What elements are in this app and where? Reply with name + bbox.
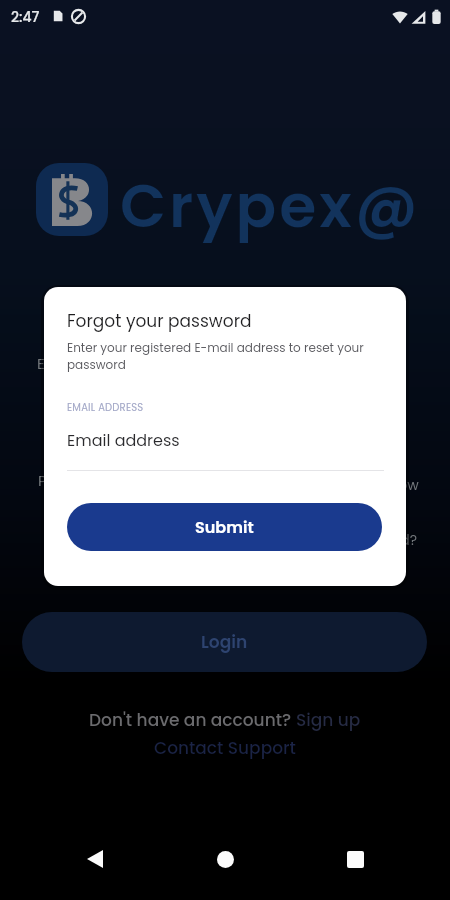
button[interactable]: Login bbox=[22, 612, 427, 672]
staticText: Submit bbox=[195, 516, 254, 538]
button[interactable]: Sign up bbox=[296, 708, 361, 732]
button[interactable]: Recent apps bbox=[331, 835, 379, 883]
button[interactable]: Home bbox=[201, 835, 249, 883]
button[interactable]: Submit bbox=[67, 503, 382, 551]
staticText: 2:47 bbox=[11, 7, 40, 27]
staticText: Login bbox=[201, 630, 248, 654]
staticText: Crypex@ bbox=[120, 164, 421, 248]
button[interactable]: Contact Support bbox=[154, 736, 296, 760]
staticText: Forgot Password? bbox=[294, 530, 418, 550]
staticText: Email address bbox=[67, 429, 180, 451]
staticText: Forgot your password bbox=[67, 309, 252, 333]
staticText: Sign up bbox=[296, 708, 361, 732]
staticText: Show bbox=[381, 475, 419, 495]
staticText: Password bbox=[38, 470, 111, 491]
button[interactable]: Show bbox=[381, 475, 419, 495]
staticText: EMAIL ADDRESS bbox=[67, 400, 144, 414]
button[interactable]: Back bbox=[71, 835, 119, 883]
button[interactable]: Forgot Password? bbox=[294, 530, 418, 550]
staticText: Don't have an account? bbox=[89, 708, 296, 732]
staticText: Contact Support bbox=[154, 736, 296, 760]
staticText: Email address bbox=[37, 353, 143, 374]
staticText: Enter your registered E-mail address to … bbox=[67, 339, 384, 373]
